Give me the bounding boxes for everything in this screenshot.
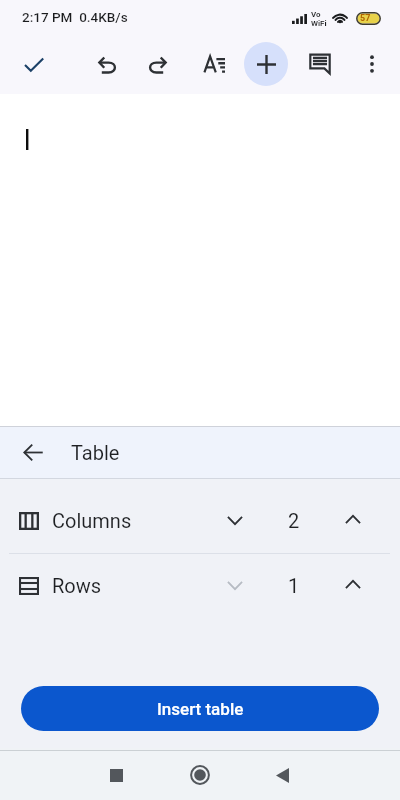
button[interactable]: More options xyxy=(350,42,394,86)
button[interactable]: Text formatting xyxy=(192,42,236,86)
button[interactable]: Back xyxy=(260,753,304,797)
staticText: 2:17 PM 0.4KB/s xyxy=(22,9,128,25)
button[interactable]: Undo xyxy=(85,42,129,86)
button[interactable]: Table xyxy=(0,427,400,478)
button[interactable]: Increase Rows xyxy=(329,561,376,608)
staticText: 2 xyxy=(288,509,300,532)
staticText: Vo xyxy=(311,10,321,19)
staticText: 57 xyxy=(360,13,371,24)
staticText: Insert table xyxy=(157,699,244,719)
button[interactable]: Done xyxy=(12,42,56,86)
staticText: Table xyxy=(71,441,120,464)
button[interactable]: Comments xyxy=(298,42,342,86)
button[interactable]: Home xyxy=(178,753,222,797)
button[interactable]: Decrease Columns xyxy=(211,497,258,544)
staticText: WiFi xyxy=(311,19,327,28)
button[interactable]: Increase Columns xyxy=(329,496,376,543)
button[interactable]: Redo xyxy=(135,42,179,86)
staticText: Rows xyxy=(52,574,102,597)
button[interactable]: Decrease Rows xyxy=(211,562,258,609)
staticText: Columns xyxy=(52,509,132,532)
button[interactable]: Recent apps xyxy=(94,753,138,797)
button[interactable]: Insert table xyxy=(21,686,379,731)
button[interactable]: Insert xyxy=(244,42,288,86)
staticText: 1 xyxy=(288,574,300,597)
